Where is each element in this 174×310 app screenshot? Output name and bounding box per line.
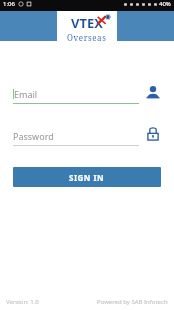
button[interactable]: SIGN IN	[13, 167, 161, 187]
staticText: Overseas	[67, 32, 107, 43]
staticText: Version: 1.0	[6, 298, 39, 306]
staticText: 1:06	[3, 0, 15, 8]
button[interactable]: Password	[13, 126, 161, 146]
staticText: Password	[13, 130, 54, 142]
staticText: VTEX	[71, 14, 103, 32]
button[interactable]: Email	[13, 84, 161, 104]
other: Password lock	[145, 126, 161, 142]
staticText: SIGN IN	[69, 172, 105, 183]
staticText: 40%	[159, 0, 171, 8]
other: User	[145, 84, 161, 100]
staticText: Powered by SAB Infotech	[97, 298, 168, 306]
staticText: Email	[14, 88, 38, 100]
